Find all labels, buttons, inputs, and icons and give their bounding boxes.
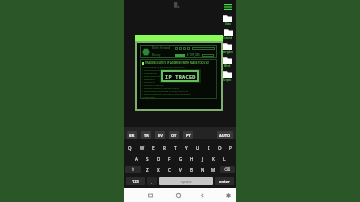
staticText: Data bbox=[225, 22, 231, 26]
button[interactable]: Y bbox=[181, 142, 192, 153]
button[interactable]: G bbox=[175, 153, 186, 164]
button[interactable]: T bbox=[170, 142, 181, 153]
staticText: S bbox=[146, 156, 149, 162]
button[interactable]: Assistant bbox=[222, 189, 234, 201]
staticText: , bbox=[151, 179, 153, 184]
staticText: $ 107,335 bbox=[187, 53, 200, 57]
staticText: F bbox=[168, 156, 171, 162]
button[interactable]: OT bbox=[169, 131, 179, 139]
staticText: > Searching/ip decoding to access elite'… bbox=[142, 90, 189, 93]
staticText: B bbox=[190, 167, 193, 173]
staticText: ⌫ bbox=[224, 167, 231, 172]
button[interactable]: H bbox=[186, 153, 197, 164]
staticText: Elite's Firewall bbox=[152, 46, 171, 50]
staticText: > Searching host bbox=[142, 69, 160, 72]
button[interactable]: enter bbox=[215, 177, 234, 185]
button[interactable]: F bbox=[164, 153, 175, 164]
staticText: C bbox=[168, 167, 171, 173]
button[interactable]: O bbox=[214, 142, 225, 153]
staticText: R bbox=[163, 145, 166, 151]
button[interactable]: EV bbox=[155, 131, 165, 139]
staticText: enter bbox=[219, 179, 230, 184]
staticText: AUTO bbox=[219, 133, 231, 138]
button[interactable]: Menu bbox=[222, 3, 233, 11]
staticText: M bbox=[211, 167, 216, 173]
button[interactable]: B bbox=[186, 164, 197, 175]
button[interactable]: V bbox=[175, 164, 186, 175]
staticText: ⇧ bbox=[131, 167, 135, 172]
staticText: O bbox=[218, 145, 222, 151]
staticText: H bbox=[190, 156, 194, 162]
button[interactable]: Work bbox=[223, 56, 232, 70]
staticText: > Analyzing ip bbox=[142, 72, 157, 75]
staticText: P bbox=[229, 145, 232, 151]
staticText: L bbox=[223, 156, 226, 162]
button[interactable]: Z bbox=[142, 164, 153, 175]
button[interactable]: A bbox=[131, 153, 142, 164]
button[interactable]: D bbox=[153, 153, 164, 164]
staticText: > Elite's fingerprint-record ip mask byp… bbox=[142, 93, 191, 96]
button[interactable]: Recents bbox=[144, 189, 156, 201]
staticText: K bbox=[212, 156, 215, 162]
button[interactable]: space bbox=[159, 177, 213, 185]
staticText: Money bbox=[152, 53, 161, 57]
button[interactable]: X bbox=[153, 164, 164, 175]
staticText: Y bbox=[185, 145, 188, 151]
staticText: OT bbox=[171, 133, 177, 138]
button[interactable]: ⇧ bbox=[125, 166, 141, 173]
button[interactable]: Tutorial bbox=[223, 28, 233, 42]
button[interactable]: J bbox=[197, 153, 208, 164]
staticText: IP TRACED bbox=[165, 73, 196, 80]
staticText: > Getting ip bbox=[142, 81, 155, 84]
staticText: U bbox=[196, 145, 200, 151]
button[interactable]: S bbox=[142, 153, 153, 164]
button[interactable]: N bbox=[197, 164, 208, 175]
button[interactable]: Scripts bbox=[223, 70, 232, 84]
staticText: I bbox=[208, 145, 210, 151]
staticText: TR bbox=[144, 133, 149, 138]
button[interactable]: L bbox=[219, 153, 230, 164]
button[interactable]: U bbox=[192, 142, 203, 153]
button[interactable]: E bbox=[148, 142, 159, 153]
staticText: N bbox=[201, 167, 205, 173]
staticText: PT bbox=[186, 133, 191, 138]
staticText: Access Gain bbox=[142, 96, 155, 98]
staticText: J bbox=[202, 156, 204, 162]
button[interactable]: Data bbox=[223, 14, 232, 28]
button[interactable]: PT bbox=[183, 131, 193, 139]
staticText: > Connecting to the internet connection bbox=[142, 66, 185, 69]
button[interactable]: TR bbox=[141, 131, 151, 139]
button[interactable]: R bbox=[159, 142, 170, 153]
staticText: Tutorial bbox=[223, 36, 233, 40]
button[interactable]: Home bbox=[172, 189, 184, 201]
staticText: V bbox=[179, 167, 182, 173]
button[interactable]: P bbox=[225, 142, 236, 153]
button[interactable]: Decrypter bbox=[221, 42, 234, 56]
staticText: > Getting ip address bbox=[142, 84, 164, 87]
staticText: EV bbox=[158, 133, 163, 138]
button[interactable]: , bbox=[147, 177, 157, 185]
staticText: W bbox=[140, 145, 145, 151]
button[interactable]: M bbox=[208, 164, 219, 175]
staticText: BR bbox=[129, 133, 135, 138]
button[interactable]: Q bbox=[124, 142, 136, 153]
button[interactable]: BR bbox=[127, 131, 137, 139]
staticText: 123 bbox=[132, 179, 139, 184]
button[interactable]: K bbox=[208, 153, 219, 164]
staticText: T bbox=[174, 145, 177, 151]
staticText: E bbox=[152, 145, 155, 151]
staticText: > Seeking address (change access) bbox=[142, 87, 180, 90]
staticText: Z bbox=[146, 167, 149, 173]
button[interactable]: C bbox=[164, 164, 175, 175]
button[interactable]: AUTO bbox=[217, 131, 233, 139]
button[interactable]: I bbox=[203, 142, 214, 153]
button[interactable]: 123 bbox=[126, 177, 145, 185]
button[interactable]: ⌫ bbox=[220, 166, 235, 173]
button[interactable]: W bbox=[136, 142, 148, 153]
staticText: TRACING ELITE'S IP ADDRESS WITH MASK TOO… bbox=[145, 61, 209, 65]
staticText: Scripts bbox=[223, 78, 232, 82]
staticText: Work bbox=[224, 64, 231, 68]
staticText: > Finding ip bbox=[142, 78, 155, 81]
button[interactable]: Back bbox=[196, 189, 208, 201]
staticText: G bbox=[179, 156, 183, 162]
